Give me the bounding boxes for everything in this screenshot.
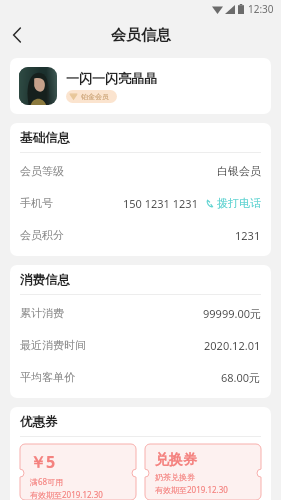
button[interactable]: 兑换券 [145,444,261,500]
staticText: 铂金会员 [81,92,109,101]
staticText: 会员积分 [20,228,64,242]
button[interactable]: 会员积分 [10,219,271,251]
button[interactable]: ￥5 [20,444,136,500]
staticText: 基础信息 [20,130,70,146]
staticText: 2020.12.01 [204,338,261,353]
staticText: 最近消费时间 [20,338,86,352]
button[interactable]: 铂金会员 [66,90,117,103]
staticText: 累计消费 [20,306,64,320]
button[interactable]: Avatar [10,58,271,114]
staticText: 奶茶兑换券 [155,472,195,482]
staticText: 平均客单价 [20,370,75,384]
other: Call [206,199,215,208]
button[interactable]: 手机号 [10,187,271,219]
staticText: 有效期至2019.12.30 [155,484,228,495]
staticText: 优惠券 [20,414,58,430]
staticText: 手机号 [20,196,53,210]
staticText: ￥5 [30,451,56,473]
staticText: 兑换券 [155,451,197,469]
button[interactable]: Back [0,18,34,52]
button[interactable]: 累计消费 [10,297,271,329]
staticText: 99999.00元 [203,306,261,321]
staticText: 消费信息 [20,272,70,288]
staticText: 68.00元 [221,370,261,385]
staticText: 有效期至2019.12.30 [30,489,103,500]
staticText: 1231 [235,228,261,243]
button[interactable]: 最近消费时间 [10,329,271,361]
staticText: 白银会员 [217,164,261,178]
button[interactable]: 平均客单价 [10,361,271,393]
other: Avatar [19,67,57,105]
staticText: 一闪一闪亮晶晶 [66,70,157,86]
staticText: 会员信息 [111,26,171,45]
button[interactable]: 会员等级 [10,155,271,187]
staticText: 150 1231 1231 [123,196,198,211]
staticText: 拨打电话 [217,196,261,210]
staticText: 12:30 [248,2,274,16]
button[interactable]: Call [206,196,261,210]
staticText: 会员等级 [20,164,64,178]
staticText: 满68可用 [30,476,64,487]
